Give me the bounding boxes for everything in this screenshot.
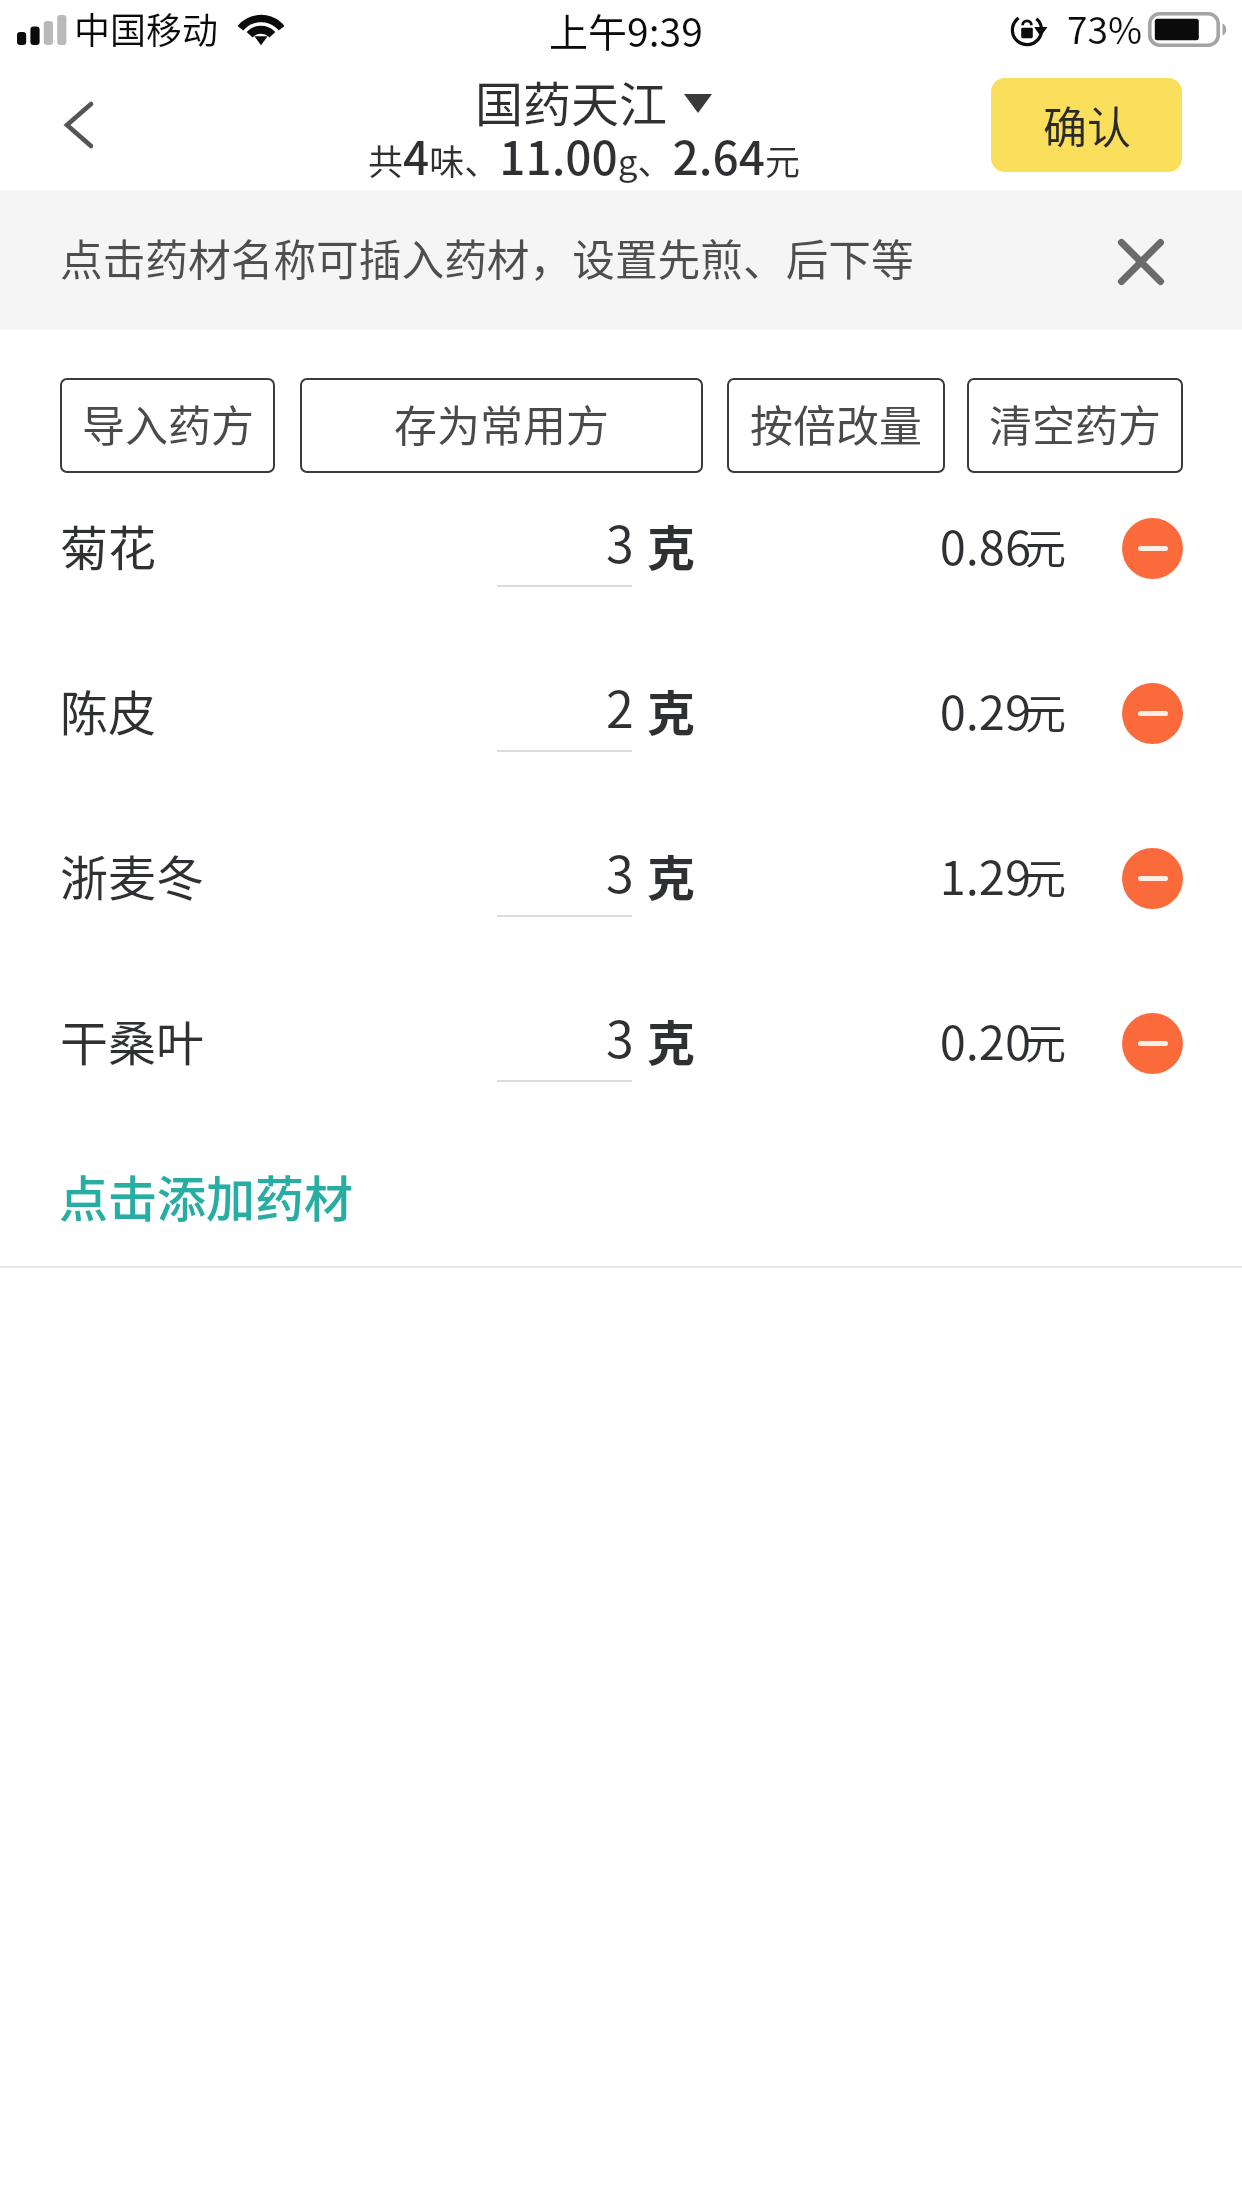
button[interactable]: Back: [10, 64, 136, 190]
staticText: 元: [1025, 1011, 1066, 1070]
staticText: 1.29: [881, 840, 1031, 908]
staticText: 存为常用方: [394, 392, 609, 454]
button[interactable]: Remove: [1122, 683, 1183, 744]
staticText: 陈皮: [60, 675, 157, 745]
staticText: 菊花: [60, 510, 157, 580]
button[interactable]: 陈皮: [40, 659, 340, 735]
button[interactable]: Remove: [1122, 848, 1183, 909]
button[interactable]: 存为常用方: [300, 378, 703, 473]
staticText: 点击药材名称可插入药材，设置先煎、后下等: [60, 226, 914, 288]
button[interactable]: 菊花: [40, 494, 340, 570]
staticText: 元: [1025, 846, 1066, 905]
staticText: 克: [647, 1005, 696, 1075]
staticText: 清空药方: [989, 392, 1161, 454]
button[interactable]: 导入药方: [60, 378, 275, 473]
staticText: 中国移动: [74, 2, 219, 54]
button[interactable]: Remove: [1122, 518, 1183, 579]
button[interactable]: 3: [497, 1000, 634, 1076]
staticText: 73%: [1067, 1, 1143, 55]
staticText: 克: [647, 840, 696, 910]
button[interactable]: Close: [1097, 218, 1185, 306]
button[interactable]: 3: [497, 505, 634, 581]
staticText: 3: [606, 1000, 634, 1072]
staticText: 0.29: [881, 675, 1031, 743]
staticText: 3: [606, 835, 634, 907]
button[interactable]: 点击添加药材: [39, 1140, 389, 1230]
button[interactable]: 确认: [991, 78, 1182, 172]
staticText: 2: [606, 670, 634, 742]
staticText: 国药天江: [475, 66, 668, 136]
button[interactable]: 浙麦冬: [40, 824, 340, 900]
button[interactable]: 清空药方: [967, 378, 1183, 473]
staticText: 干桑叶: [60, 1005, 205, 1075]
staticText: 3: [606, 505, 634, 577]
button[interactable]: 3: [497, 835, 634, 911]
button[interactable]: 国药天江: [475, 66, 712, 136]
staticText: 点击添加药材: [59, 1160, 354, 1231]
button[interactable]: Remove: [1122, 1013, 1183, 1074]
button[interactable]: 干桑叶: [40, 989, 340, 1065]
staticText: 共4味、11.00g、2.64元: [368, 122, 800, 189]
staticText: 0.20: [881, 1005, 1031, 1073]
staticText: 元: [1025, 516, 1066, 575]
staticText: 导入药方: [82, 392, 254, 454]
staticText: 克: [647, 675, 696, 745]
staticText: 元: [1025, 681, 1066, 740]
staticText: 0.86: [881, 510, 1031, 578]
button[interactable]: 按倍改量: [727, 378, 945, 473]
staticText: 按倍改量: [750, 392, 922, 454]
staticText: 上午9:39: [549, 2, 703, 58]
staticText: 确认: [1043, 93, 1131, 157]
staticText: 浙麦冬: [60, 840, 205, 910]
button[interactable]: 2: [497, 670, 634, 746]
staticText: 克: [647, 510, 696, 580]
